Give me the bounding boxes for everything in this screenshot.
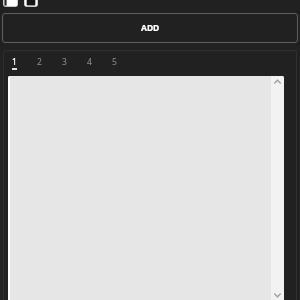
button[interactable]: Tab two bbox=[24, 0, 38, 7]
staticText: ADD bbox=[141, 22, 160, 34]
button[interactable]: 2 bbox=[37, 56, 62, 72]
button[interactable]: 3 bbox=[62, 56, 87, 72]
button[interactable]: 5 bbox=[112, 56, 137, 72]
button[interactable]: Tab one bbox=[3, 0, 18, 7]
button[interactable]: 4 bbox=[87, 56, 112, 72]
staticText: 3 bbox=[62, 56, 67, 68]
staticText: 5 bbox=[112, 56, 117, 68]
staticText: 1 bbox=[12, 56, 17, 68]
button[interactable]: ADD bbox=[2, 13, 298, 43]
staticText: 4 bbox=[87, 56, 92, 68]
staticText: 2 bbox=[37, 56, 42, 68]
button[interactable]: 1 bbox=[12, 56, 37, 72]
